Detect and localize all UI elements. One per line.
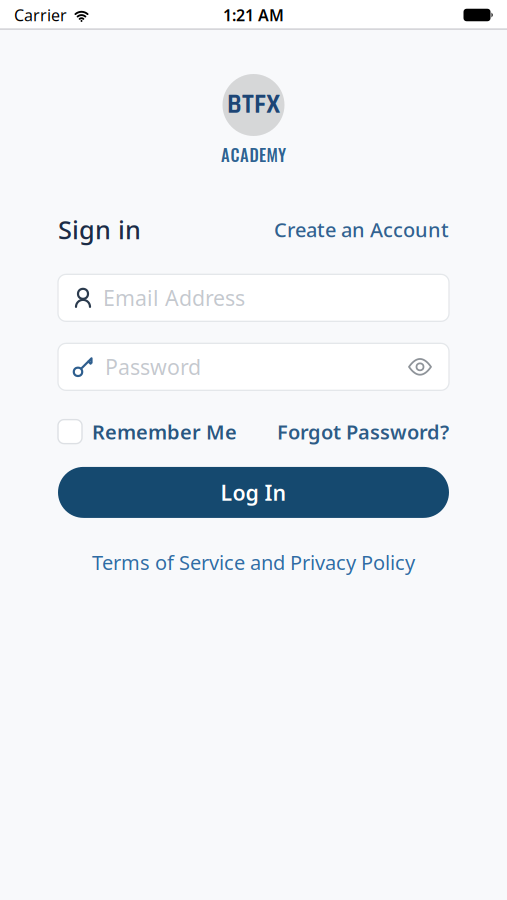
button[interactable]: Log In: [58, 467, 449, 518]
staticText: BTFX: [227, 88, 280, 122]
staticText: 1:21 AM: [223, 4, 284, 26]
staticText: Carrier: [14, 4, 67, 26]
staticText: Password: [105, 353, 201, 381]
staticText: Create an Account: [274, 216, 449, 243]
staticText: Remember Me: [92, 418, 237, 445]
staticText: Email Address: [103, 284, 245, 312]
button[interactable]: Terms of Service and Privacy Policy: [92, 549, 415, 575]
button[interactable]: Password: [58, 343, 449, 390]
staticText: ACADEMY: [221, 142, 286, 167]
button[interactable]: Create an Account: [274, 216, 449, 243]
button[interactable]: Forgot Password?: [277, 418, 449, 445]
button[interactable]: Email Address: [58, 274, 449, 321]
staticText: Log In: [220, 478, 286, 506]
button[interactable]: Show Password: [409, 359, 449, 374]
staticText: Sign in: [58, 213, 141, 246]
button[interactable]: Remember Me: [58, 418, 237, 445]
staticText: Forgot Password?: [277, 418, 449, 445]
staticText: Terms of Service and Privacy Policy: [92, 549, 415, 575]
